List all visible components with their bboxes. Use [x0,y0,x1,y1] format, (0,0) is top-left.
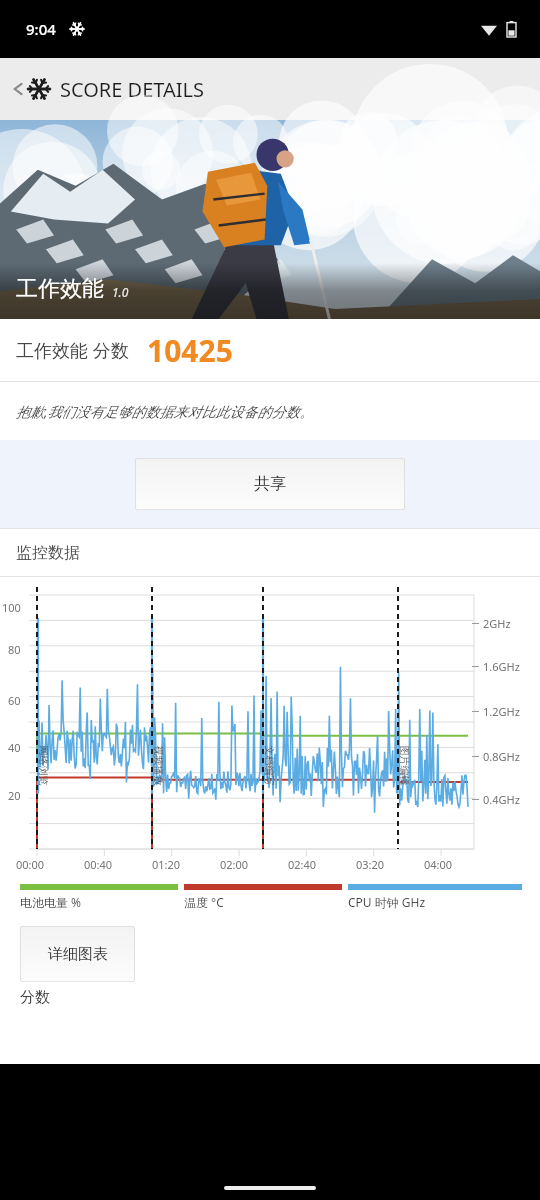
staticText: 100 [2,600,21,615]
staticText: 02:00 [220,857,249,872]
staticText: 00:00 [16,857,45,872]
staticText: 2GHz [483,616,511,631]
staticText: 10425 [147,330,233,371]
staticText: 详细图表 [48,945,108,964]
staticText: 04:00 [424,857,453,872]
staticText: 监控数据 [16,543,80,563]
staticText: 网络浏览 [36,745,49,785]
staticText: 视频播放 [151,745,164,785]
staticText: 00:40 [84,857,113,872]
staticText: 文档编写 [262,745,275,785]
staticText: 工作效能 分数 [16,338,129,363]
staticText: 1.2GHz [483,704,520,719]
staticText: SCORE DETAILS [60,76,205,103]
button[interactable]: SCORE DETAILS [0,58,540,120]
staticText: 0.4GHz [483,792,520,807]
staticText: 0.8GHz [483,749,520,764]
staticText: 9:04 [26,19,56,39]
staticText: 工作效能 [16,275,104,303]
button[interactable]: 详细图表 [20,926,135,982]
staticText: 20 [8,788,21,803]
staticText: 抱歉,我们没有足够的数据来对比此设备的分数。 [16,402,314,421]
staticText: 80 [8,642,21,657]
staticText: 图片编辑 [397,745,410,785]
staticText: 03:20 [356,857,385,872]
staticText: 02:40 [288,857,317,872]
staticText: 1.0 [112,284,129,300]
staticText: 共享 [254,474,286,494]
staticText: CPU 时钟 GHz [348,894,426,910]
staticText: 电池电量 % [20,894,82,910]
staticText: 1.6GHz [483,659,520,674]
staticText: 温度 °C [184,894,224,910]
staticText: 60 [8,693,21,708]
staticText: 01:20 [152,857,181,872]
staticText: 40 [8,740,21,755]
staticText: 分数 [20,988,50,1007]
button[interactable]: 共享 [135,458,405,510]
